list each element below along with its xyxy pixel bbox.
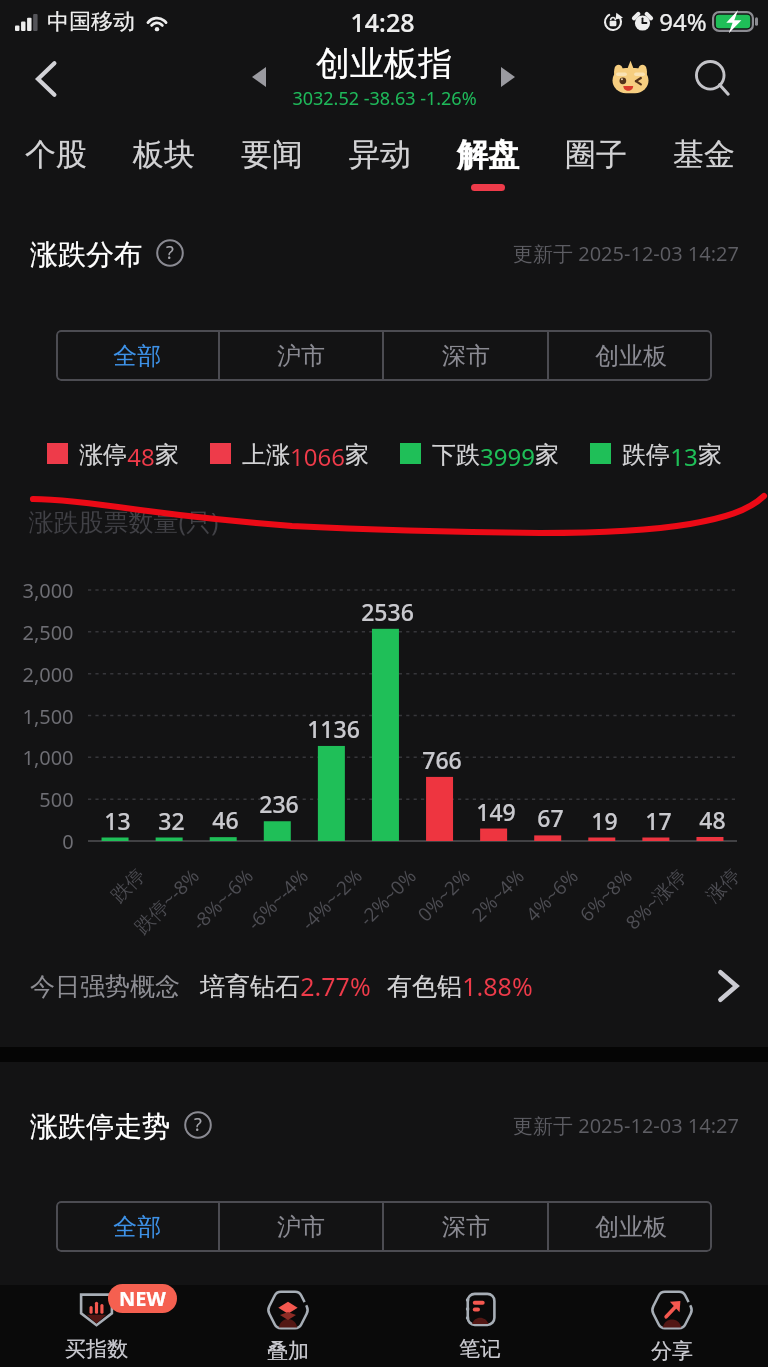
staticText: -6%~-4% [241, 863, 314, 936]
staticText: 8%~涨停 [620, 863, 692, 935]
staticText: 叠加 [267, 1338, 309, 1364]
staticText: 3032.52 -38.63 -1.26% [292, 86, 477, 111]
staticText: 19 [591, 805, 618, 831]
button[interactable]: 异动 [326, 118, 434, 198]
staticText: 上涨 [242, 440, 290, 466]
button[interactable]: 沪市 [220, 1201, 382, 1252]
staticText: 要闻 [241, 135, 303, 174]
staticText: 2,500 [22, 619, 74, 645]
staticText: 沪市 [277, 341, 325, 371]
button[interactable]: 解盘 [434, 118, 542, 198]
staticText: 2,000 [22, 661, 74, 687]
staticText: 全部 [113, 1212, 161, 1242]
button[interactable]: 创业板 [549, 1201, 712, 1252]
staticText: 深市 [442, 1212, 490, 1242]
button[interactable]: 分享 [576, 1285, 768, 1367]
staticText: 14:28 [350, 5, 415, 39]
staticText: 涨停 [79, 440, 127, 466]
staticText: 板块 [133, 135, 195, 174]
staticText: 圈子 [565, 135, 627, 174]
staticText: 32 [158, 805, 185, 831]
staticText: 2%~4% [466, 863, 530, 927]
staticText: 1136 [307, 713, 360, 739]
staticText: 更新于 2025-12-03 14:27 [513, 1112, 739, 1139]
staticText: 149 [476, 796, 516, 822]
staticText: 沪市 [277, 1212, 325, 1242]
staticText: -8%~-6% [186, 863, 259, 936]
button[interactable]: 全部 [56, 330, 218, 381]
staticText: 3,000 [22, 577, 74, 603]
staticText: 跌停 [106, 864, 150, 908]
button[interactable]: 个股 [2, 118, 110, 198]
button[interactable]: Search [687, 53, 739, 105]
staticText: 1,500 [22, 703, 74, 729]
staticText: NEW [119, 1285, 166, 1312]
button[interactable]: Back [19, 52, 73, 106]
staticText: 94% [659, 5, 707, 38]
staticText: 家 [345, 440, 369, 466]
button[interactable]: 叠加 [192, 1285, 384, 1367]
staticText: 有色铝 [387, 971, 462, 1002]
staticText: 买指数 [65, 1336, 128, 1362]
staticText: 1,000 [22, 744, 74, 770]
staticText: 家 [155, 440, 179, 466]
button[interactable]: 深市 [384, 330, 547, 381]
button[interactable]: 基金 [650, 118, 758, 198]
staticText: 中国移动 [47, 8, 135, 36]
staticText: 个股 [25, 135, 87, 174]
staticText: 0 [62, 828, 74, 854]
staticText: ? [166, 240, 174, 265]
staticText: -4%~-2% [295, 863, 368, 936]
button[interactable]: Previous index [242, 60, 276, 94]
button[interactable]: 全部 [56, 1201, 218, 1252]
button[interactable]: 要闻 [218, 118, 326, 198]
staticText: 2536 [361, 596, 414, 622]
staticText: 家 [698, 440, 722, 466]
staticText: 笔记 [459, 1336, 501, 1362]
staticText: 4%~6% [520, 863, 584, 927]
staticText: 17 [645, 805, 672, 831]
staticText: 1066 [290, 440, 345, 466]
button[interactable]: Help [184, 1111, 212, 1139]
staticText: 创业板 [595, 341, 667, 371]
staticText: 异动 [349, 135, 411, 174]
staticText: 13 [670, 440, 698, 466]
button[interactable]: Profile [604, 52, 656, 104]
button[interactable]: Help [156, 239, 184, 267]
staticText: 236 [259, 788, 299, 814]
button[interactable]: Next index [491, 60, 525, 94]
staticText: 500 [39, 786, 74, 812]
button[interactable]: NEW [0, 1285, 192, 1367]
staticText: 1.88% [462, 969, 533, 1003]
staticText: 2.77% [300, 969, 371, 1003]
staticText: 创业板 [595, 1212, 667, 1242]
button[interactable]: 笔记 [384, 1285, 576, 1367]
staticText: 基金 [673, 135, 735, 174]
staticText: 解盘 [457, 135, 519, 174]
staticText: 13 [104, 805, 131, 831]
button[interactable]: 圈子 [542, 118, 650, 198]
staticText: 3999 [480, 440, 535, 466]
staticText: 涨停 [701, 864, 745, 908]
button[interactable]: 深市 [384, 1201, 547, 1252]
staticText: 家 [535, 440, 559, 466]
staticText: -2%~0% [353, 863, 422, 932]
staticText: 涨跌分布 [30, 237, 142, 269]
staticText: 分享 [651, 1338, 693, 1364]
button[interactable]: 沪市 [220, 330, 382, 381]
staticText: 创业板指 [316, 42, 452, 85]
staticText: 涨跌股票数量(只) [28, 504, 219, 538]
staticText: 0%~2% [412, 863, 476, 927]
staticText: 培育钻石 [200, 971, 300, 1002]
staticText: ? [194, 1112, 202, 1137]
staticText: 更新于 2025-12-03 14:27 [513, 240, 739, 267]
button[interactable]: 创业板 [549, 330, 712, 381]
button[interactable]: 今日强势概念 [0, 955, 768, 1017]
staticText: 今日强势概念 [30, 971, 180, 1002]
staticText: 下跌 [432, 440, 480, 466]
button[interactable]: 板块 [110, 118, 218, 198]
staticText: 跌停~-8% [128, 863, 205, 939]
staticText: 6%~8% [574, 863, 638, 927]
staticText: 48 [699, 804, 726, 830]
staticText: 67 [537, 802, 564, 828]
